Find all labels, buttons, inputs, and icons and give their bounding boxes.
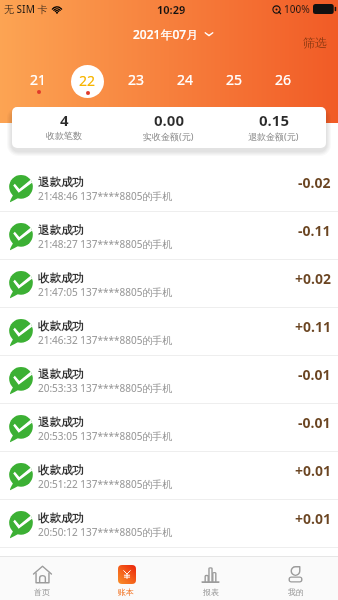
- button[interactable]: 退款成功: [0, 212, 338, 259]
- staticText: 25: [226, 70, 243, 89]
- button[interactable]: 我的: [253, 557, 338, 600]
- staticText: 收款成功: [38, 511, 84, 525]
- button[interactable]: 退款成功: [0, 356, 338, 403]
- staticText: 22: [79, 71, 96, 90]
- staticText: 20:53:33 137****8805的手机: [38, 381, 173, 395]
- staticText: 报表: [203, 587, 219, 597]
- staticText: +0.11: [295, 317, 331, 336]
- button[interactable]: 24: [161, 58, 210, 102]
- staticText: -0.02: [298, 173, 331, 192]
- button[interactable]: 22: [63, 58, 112, 102]
- staticText: 10:29: [157, 2, 186, 17]
- staticText: 退款成功: [38, 367, 84, 381]
- staticText: 筛选: [303, 35, 327, 50]
- staticText: 20:51:22 137****8805的手机: [38, 477, 173, 491]
- button[interactable]: 2021年07月: [133, 26, 214, 42]
- staticText: 我的: [288, 587, 304, 597]
- button[interactable]: 25: [210, 58, 259, 102]
- staticText: 21:48:27 137****8805的手机: [38, 237, 173, 251]
- staticText: 退款成功: [38, 175, 84, 189]
- staticText: 无 SIM 卡: [4, 2, 48, 16]
- staticText: -0.01: [298, 365, 331, 384]
- button[interactable]: 退款成功: [0, 404, 338, 451]
- staticText: 20:50:12 137****8805的手机: [38, 525, 173, 539]
- staticText: 21:48:46 137****8805的手机: [38, 189, 173, 203]
- other: 首页: [33, 565, 52, 584]
- staticText: -0.01: [298, 413, 331, 432]
- button[interactable]: 21: [14, 58, 63, 102]
- button[interactable]: 退款成功: [0, 164, 338, 211]
- button[interactable]: 收款成功: [0, 452, 338, 499]
- other: 报表: [201, 565, 220, 584]
- staticText: 账本: [118, 587, 134, 597]
- button[interactable]: 筛选: [303, 35, 338, 50]
- staticText: 2021年07月: [133, 26, 199, 42]
- staticText: 24: [177, 70, 194, 89]
- other: 账本: [117, 565, 136, 584]
- staticText: 首页: [34, 587, 50, 597]
- staticText: 实收金额(元): [143, 130, 194, 142]
- button[interactable]: 收款成功: [0, 500, 338, 547]
- button[interactable]: 收款成功: [0, 308, 338, 355]
- staticText: -0.11: [298, 221, 331, 240]
- staticText: 4: [60, 110, 69, 130]
- staticText: +0.02: [295, 269, 331, 288]
- staticText: 20:53:05 137****8805的手机: [38, 429, 173, 443]
- button[interactable]: 收款成功: [0, 260, 338, 307]
- staticText: 26: [275, 70, 292, 89]
- staticText: 21: [30, 70, 47, 89]
- staticText: 退款成功: [38, 415, 84, 429]
- staticText: 21:47:05 137****8805的手机: [38, 285, 173, 299]
- staticText: 收款成功: [38, 271, 84, 285]
- staticText: 收款成功: [38, 319, 84, 333]
- button[interactable]: 报表: [168, 557, 253, 600]
- staticText: 0.15: [259, 110, 289, 130]
- staticText: 退款成功: [38, 223, 84, 237]
- staticText: +0.01: [295, 461, 331, 480]
- button[interactable]: 账本: [84, 557, 168, 600]
- staticText: 收款笔数: [46, 130, 82, 141]
- button[interactable]: 26: [259, 58, 308, 102]
- staticText: 收款成功: [38, 463, 84, 477]
- staticText: 0.00: [154, 110, 184, 130]
- staticText: 21:46:32 137****8805的手机: [38, 333, 173, 347]
- staticText: 23: [128, 70, 145, 89]
- staticText: +0.01: [295, 509, 331, 528]
- button[interactable]: 23: [112, 58, 161, 102]
- staticText: 退款金额(元): [248, 130, 299, 142]
- staticText: 100%: [284, 2, 310, 16]
- other: 我的: [286, 565, 305, 584]
- button[interactable]: 首页: [0, 557, 84, 600]
